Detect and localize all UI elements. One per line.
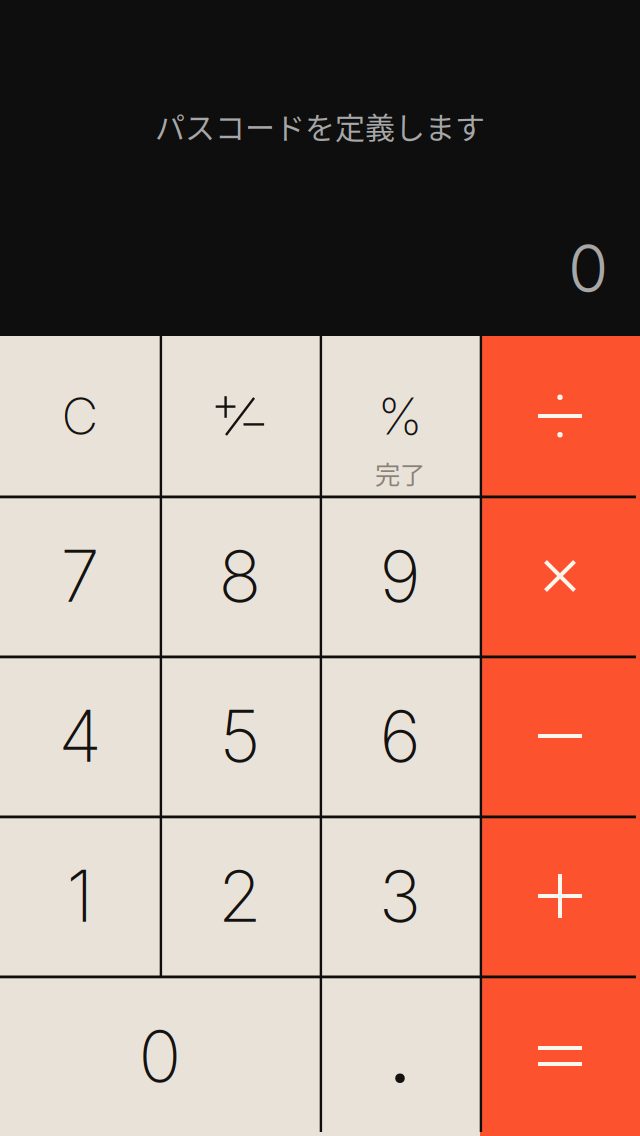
button[interactable]: Multiply <box>480 496 640 656</box>
button[interactable]: 0 <box>0 976 320 1136</box>
button[interactable]: 9 <box>320 496 480 656</box>
button[interactable]: Equals <box>480 976 640 1136</box>
staticText: 2 <box>218 853 262 939</box>
staticText: 0 <box>138 1013 181 1099</box>
button[interactable]: 1 <box>0 816 160 976</box>
button[interactable]: C <box>0 336 160 496</box>
button[interactable]: Divide <box>480 336 640 496</box>
staticText: 完了 <box>375 455 425 491</box>
staticText: 9 <box>379 533 420 619</box>
button[interactable]: 8 <box>160 496 320 656</box>
button[interactable]: % <box>320 336 480 496</box>
button[interactable]: Subtract <box>480 656 640 816</box>
button[interactable]: 6 <box>320 656 480 816</box>
staticText: 6 <box>379 693 420 779</box>
staticText: パスコードを定義します <box>155 104 485 147</box>
staticText: % <box>377 385 422 447</box>
staticText: 3 <box>379 853 421 939</box>
staticText: 1 <box>66 853 93 939</box>
button[interactable]: 5 <box>160 656 320 816</box>
button[interactable]: 3 <box>320 816 480 976</box>
staticText: 5 <box>219 693 260 779</box>
staticText: 0 <box>568 229 608 308</box>
button[interactable]: 7 <box>0 496 160 656</box>
button[interactable]: Plus minus <box>160 336 320 496</box>
button[interactable]: 4 <box>0 656 160 816</box>
button[interactable]: Add <box>480 816 640 976</box>
staticText: C <box>61 385 98 447</box>
staticText: 8 <box>218 533 261 619</box>
button[interactable]: 2 <box>160 816 320 976</box>
staticText: 4 <box>58 693 101 779</box>
button[interactable]: Decimal point <box>320 976 480 1136</box>
staticText: 7 <box>60 533 99 619</box>
